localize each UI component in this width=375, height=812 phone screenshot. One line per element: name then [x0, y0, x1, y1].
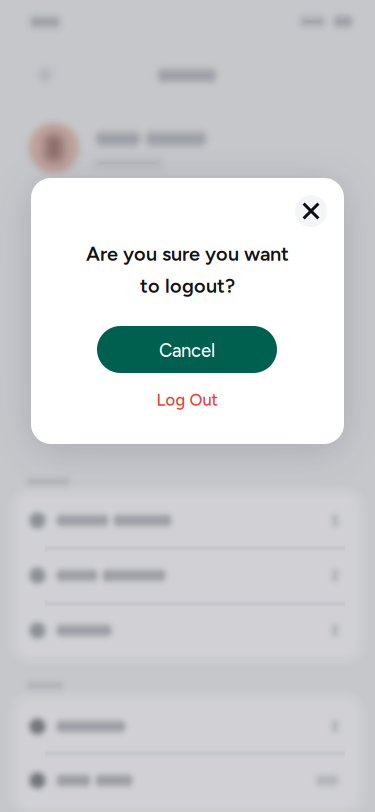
staticText: to logout? — [140, 274, 235, 298]
button[interactable]: Cancel — [97, 326, 277, 373]
button[interactable]: Log Out — [97, 383, 277, 417]
button[interactable]: Close — [295, 195, 327, 227]
staticText: Log Out — [156, 390, 217, 410]
staticText: Are you sure you want — [86, 242, 289, 266]
staticText: Cancel — [159, 339, 215, 362]
